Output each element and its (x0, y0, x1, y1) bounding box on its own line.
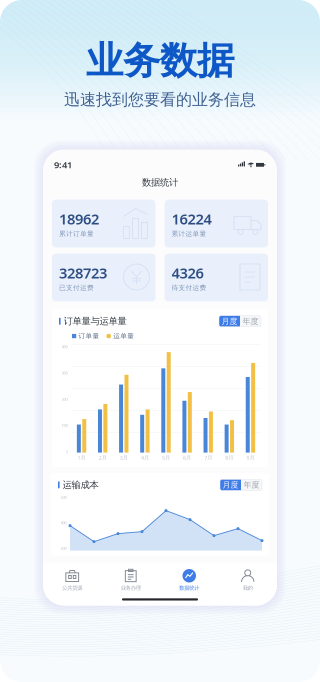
staticText: 订单量 (78, 332, 99, 340)
staticText: 年度 (243, 480, 259, 490)
staticText: 400 (61, 344, 67, 349)
button[interactable]: 数据统计 (160, 566, 218, 593)
staticText: 年度 (242, 316, 258, 326)
staticText: 328723 (59, 263, 107, 283)
staticText: 待支付运费 (171, 284, 206, 292)
button[interactable]: 月度 (220, 479, 241, 490)
staticText: 5月 (162, 454, 170, 461)
button[interactable]: 月度 (219, 316, 240, 327)
staticText: 业务办理 (121, 585, 141, 591)
staticText: 400 (60, 520, 66, 525)
staticText: 6月 (183, 454, 191, 461)
button[interactable]: 16224 (164, 199, 268, 247)
button[interactable]: 年度 (241, 479, 262, 490)
staticText: 我的 (243, 585, 253, 591)
staticText: 2月 (99, 454, 107, 461)
staticText: 0 (65, 449, 67, 454)
staticText: 数据统计 (142, 177, 178, 188)
staticText: 已支付运费 (59, 284, 94, 292)
staticText: 16224 (171, 209, 211, 229)
staticText: 200 (61, 396, 67, 402)
staticText: 7月 (204, 454, 212, 461)
staticText: 月度 (222, 480, 238, 490)
staticText: 8月 (225, 454, 233, 461)
button[interactable]: 328723 (52, 253, 155, 301)
staticText: 4月 (141, 454, 149, 461)
staticText: 300 (61, 370, 67, 376)
staticText: 200 (60, 545, 66, 551)
button[interactable]: 公共货源 (43, 566, 101, 593)
staticText: 1月 (78, 454, 86, 461)
staticText: 累计运单量 (171, 230, 206, 238)
staticText: 迅速找到您要看的业务信息 (64, 90, 256, 110)
staticText: 3月 (120, 454, 128, 461)
staticText: 订单量与运单量 (64, 315, 127, 327)
staticText: 9:41 (54, 158, 72, 171)
staticText: 运单量 (113, 332, 134, 340)
staticText: 600 (60, 494, 66, 500)
staticText: 公共货源 (62, 585, 82, 591)
staticText: 运输成本 (63, 479, 99, 491)
staticText: 累计订单量 (59, 230, 94, 238)
staticText: 月度 (221, 316, 237, 326)
staticText: 数据统计 (179, 585, 199, 591)
staticText: 100 (61, 423, 67, 428)
button[interactable]: 我的 (218, 566, 277, 593)
staticText: 18962 (59, 209, 99, 229)
button[interactable]: 年度 (240, 316, 261, 327)
button[interactable]: 18962 (52, 199, 155, 247)
button[interactable]: 业务办理 (101, 566, 160, 593)
staticText: 9月 (246, 454, 254, 461)
button[interactable]: 4326 (164, 253, 268, 301)
staticText: 4326 (171, 263, 203, 283)
staticText: 业务数据 (86, 38, 234, 84)
